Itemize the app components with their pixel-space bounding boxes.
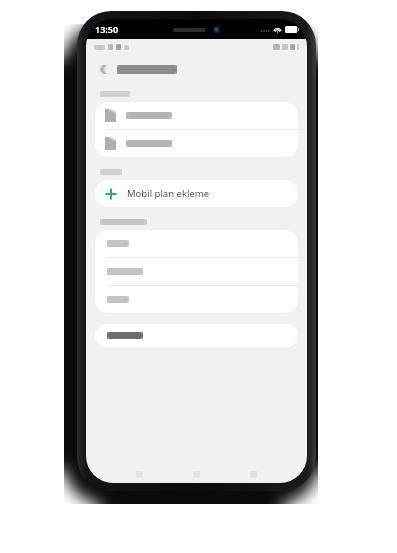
button[interactable] [95, 130, 298, 157]
button[interactable]: Mobil plan ekleme [95, 180, 298, 207]
button[interactable] [95, 102, 298, 129]
button[interactable] [95, 286, 298, 313]
button[interactable] [95, 324, 298, 347]
staticText: Mobil plan ekleme [127, 187, 210, 200]
staticText: 13:50 [95, 23, 119, 35]
button[interactable] [95, 230, 298, 257]
button[interactable]: Geri [93, 59, 113, 79]
button[interactable] [95, 258, 298, 285]
